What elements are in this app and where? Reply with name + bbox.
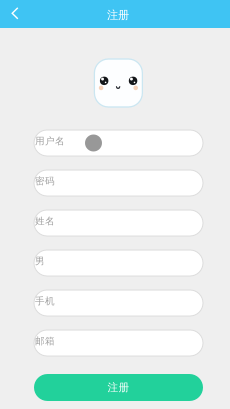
button[interactable]: 密码 <box>34 170 203 196</box>
staticText: 用户名 <box>35 135 65 147</box>
button[interactable]: 邮箱 <box>34 330 203 356</box>
button[interactable]: 手机 <box>34 290 203 316</box>
staticText: 注册 <box>107 381 129 394</box>
button[interactable]: 注册 <box>34 374 203 401</box>
button[interactable]: 男 <box>34 250 203 276</box>
staticText: 手机 <box>35 295 55 307</box>
button[interactable]: 用户名 <box>34 130 203 156</box>
button[interactable]: Back <box>0 0 28 28</box>
staticText: 邮箱 <box>35 335 55 347</box>
staticText: 密码 <box>35 175 55 187</box>
staticText: 男 <box>35 255 45 267</box>
staticText: 姓名 <box>35 215 55 227</box>
staticText: 注册 <box>107 8 129 22</box>
button[interactable]: 姓名 <box>34 210 203 236</box>
